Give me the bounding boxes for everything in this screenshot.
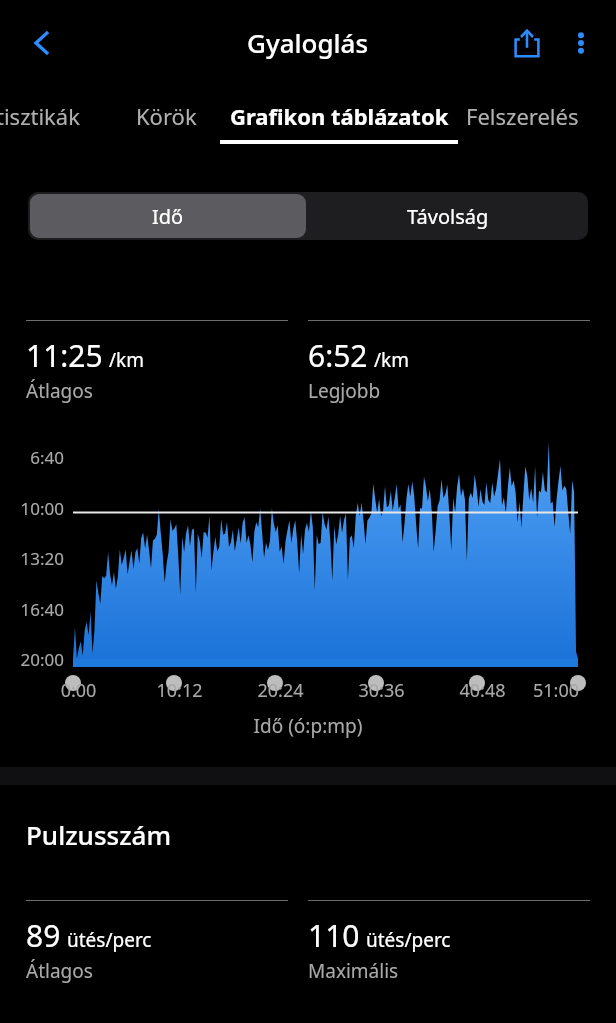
staticText: 89 [26, 915, 61, 956]
staticText: 20:24 [230, 678, 331, 703]
staticText: Maximális [308, 958, 399, 984]
button[interactable]: Share [500, 16, 554, 70]
staticText: /km [374, 347, 409, 373]
staticText: tisztikák [0, 101, 80, 131]
staticText: Távolság [407, 203, 489, 230]
staticText: 10:00 [0, 497, 64, 520]
button[interactable]: 11:25 [26, 320, 288, 404]
staticText: 16:40 [0, 598, 64, 621]
button[interactable]: 6:52 [308, 320, 590, 404]
staticText: Átlagos [26, 378, 93, 404]
staticText: Gyaloglás [247, 25, 369, 60]
staticText: Körök [136, 101, 197, 131]
staticText: 6:40 [0, 446, 64, 469]
staticText: 11:25 [26, 335, 103, 376]
staticText: Pulzusszám [26, 817, 172, 852]
button[interactable]: 89 [26, 900, 288, 984]
staticText: ütés/perc [366, 927, 451, 953]
staticText: 30:36 [331, 678, 432, 703]
button[interactable]: Körök [112, 85, 220, 160]
button[interactable]: More options [554, 16, 608, 70]
staticText: 10:12 [129, 678, 230, 703]
staticText: Idő [152, 203, 184, 230]
staticText: /km [109, 347, 144, 373]
button[interactable]: 110 [308, 900, 590, 984]
staticText: 13:20 [0, 547, 64, 570]
staticText: 110 [308, 915, 360, 956]
staticText: Legjobb [308, 378, 381, 404]
staticText: 20:00 [0, 648, 64, 671]
button[interactable]: Felszerelés [458, 85, 616, 160]
staticText: Grafikon táblázatok [230, 101, 449, 131]
staticText: Felszerelés [466, 101, 579, 131]
button[interactable]: Távolság [308, 192, 588, 240]
staticText: 0:00 [28, 678, 129, 703]
staticText: 6:52 [308, 335, 368, 376]
button[interactable]: tisztikák [0, 85, 112, 160]
button[interactable]: Back [14, 15, 70, 71]
staticText: ütés/perc [67, 927, 152, 953]
staticText: 51:00 [533, 678, 616, 703]
button[interactable]: Idő [30, 194, 306, 238]
staticText: 40:48 [432, 678, 533, 703]
button[interactable]: Grafikon táblázatok [220, 85, 458, 160]
staticText: Átlagos [26, 958, 93, 984]
staticText: Idő (ó:p:mp) [0, 713, 616, 739]
